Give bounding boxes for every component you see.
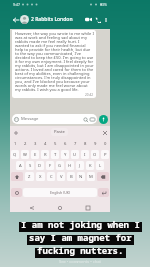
button[interactable]: 2	[20, 139, 30, 148]
button[interactable]: B	[67, 172, 75, 181]
staticText: See • comments • chat	[59, 259, 101, 264]
button[interactable]: C	[47, 172, 55, 181]
button[interactable]: 7	[70, 139, 80, 148]
button[interactable]: Message	[12, 114, 97, 124]
button[interactable]: J	[76, 161, 84, 170]
staticText: 4	[44, 141, 47, 147]
staticText: U	[73, 152, 77, 158]
button[interactable]: Voice message	[99, 115, 108, 124]
staticText: 20:42	[85, 93, 94, 97]
button[interactable]: X	[36, 172, 45, 181]
staticText: 9:47	[13, 2, 20, 7]
staticText: 1	[14, 141, 17, 147]
staticText: 5	[54, 141, 57, 147]
button[interactable]: N	[77, 172, 85, 181]
staticText: 3	[34, 141, 37, 147]
staticText: 6	[64, 141, 67, 147]
button[interactable]: F	[46, 161, 54, 170]
button[interactable]: Shift	[11, 172, 23, 181]
staticText: say I am magnet for	[29, 231, 132, 245]
button[interactable]: E	[31, 150, 39, 159]
button[interactable]: Q	[11, 150, 19, 159]
staticText: 2 Rabbits London	[31, 16, 73, 23]
button[interactable]: Close suggestions	[101, 129, 108, 136]
button[interactable]: Video call	[84, 15, 93, 24]
button[interactable]: Back	[26, 203, 38, 212]
staticText: fucking nutters.	[37, 244, 124, 258]
button[interactable]: 5	[50, 139, 60, 148]
staticText: F	[49, 163, 52, 169]
button[interactable]: S	[26, 161, 34, 170]
staticText: However, the way you wrote to me while I…	[15, 31, 94, 93]
button[interactable]: Enter	[98, 188, 109, 197]
staticText: English (UK)	[50, 190, 71, 195]
staticText: Message	[21, 116, 39, 122]
staticText: K	[89, 163, 92, 169]
button[interactable]: Paste	[51, 128, 68, 136]
staticText: C	[50, 174, 53, 180]
button[interactable]: Emoji	[11, 188, 22, 197]
button[interactable]: W	[21, 150, 29, 159]
staticText: P	[104, 152, 107, 158]
button[interactable]: 3	[30, 139, 40, 148]
button[interactable]: K	[86, 161, 94, 170]
staticText: L	[99, 163, 102, 169]
staticText: J	[79, 163, 81, 169]
staticText: B	[70, 174, 73, 180]
staticText: E	[34, 152, 37, 158]
staticText: 0	[104, 141, 107, 147]
staticText: T	[54, 152, 57, 158]
staticText: I am not joking when I	[21, 218, 140, 232]
button[interactable]: 1	[10, 139, 20, 148]
button[interactable]: A	[16, 161, 24, 170]
button[interactable]: P	[101, 150, 109, 159]
staticText: 33%	[100, 2, 107, 7]
button[interactable]: 8	[80, 139, 90, 148]
staticText: 9	[94, 141, 97, 147]
staticText: H	[68, 163, 72, 169]
button[interactable]: Home	[54, 203, 66, 212]
button[interactable]: Z	[25, 172, 34, 181]
button[interactable]: Keyboard settings	[12, 129, 19, 136]
staticText: X	[39, 174, 42, 180]
button[interactable]: L	[96, 161, 104, 170]
button[interactable]: Y	[61, 150, 69, 159]
button[interactable]: More options	[102, 16, 109, 23]
button[interactable]: 4	[40, 139, 50, 148]
button[interactable]: Backspace	[97, 172, 109, 181]
staticText: W	[23, 152, 27, 158]
staticText: 2	[24, 141, 27, 147]
staticText: 8	[84, 141, 87, 147]
button[interactable]: U	[71, 150, 79, 159]
button[interactable]: Recents	[82, 203, 94, 212]
button[interactable]: D	[36, 161, 44, 170]
button[interactable]: R	[41, 150, 49, 159]
staticText: Z	[28, 174, 31, 180]
staticText: N	[79, 174, 83, 180]
button[interactable]: T	[51, 150, 59, 159]
staticText: D	[38, 163, 42, 169]
button[interactable]: G	[56, 161, 64, 170]
staticText: V	[60, 174, 63, 180]
button[interactable]: V	[57, 172, 65, 181]
staticText: 7	[74, 141, 77, 147]
staticText: A	[19, 163, 22, 169]
button[interactable]: Voice call	[93, 15, 102, 24]
button[interactable]: 6	[60, 139, 70, 148]
button[interactable]: 9	[90, 139, 100, 148]
staticText: Paste	[54, 129, 65, 135]
button[interactable]: I	[81, 150, 89, 159]
staticText: I	[84, 152, 86, 158]
staticText: G	[58, 163, 62, 169]
button[interactable]: H	[66, 161, 74, 170]
button[interactable]: 0	[100, 139, 110, 148]
staticText: R	[44, 152, 47, 158]
button[interactable]: M	[87, 172, 95, 181]
staticText: Y	[64, 152, 67, 158]
button[interactable]: Back	[11, 15, 20, 24]
button[interactable]: O	[91, 150, 99, 159]
staticText: S	[29, 163, 32, 169]
button[interactable]: English (UK)	[23, 188, 97, 197]
staticText: O	[93, 152, 97, 158]
staticText: M	[89, 174, 93, 180]
